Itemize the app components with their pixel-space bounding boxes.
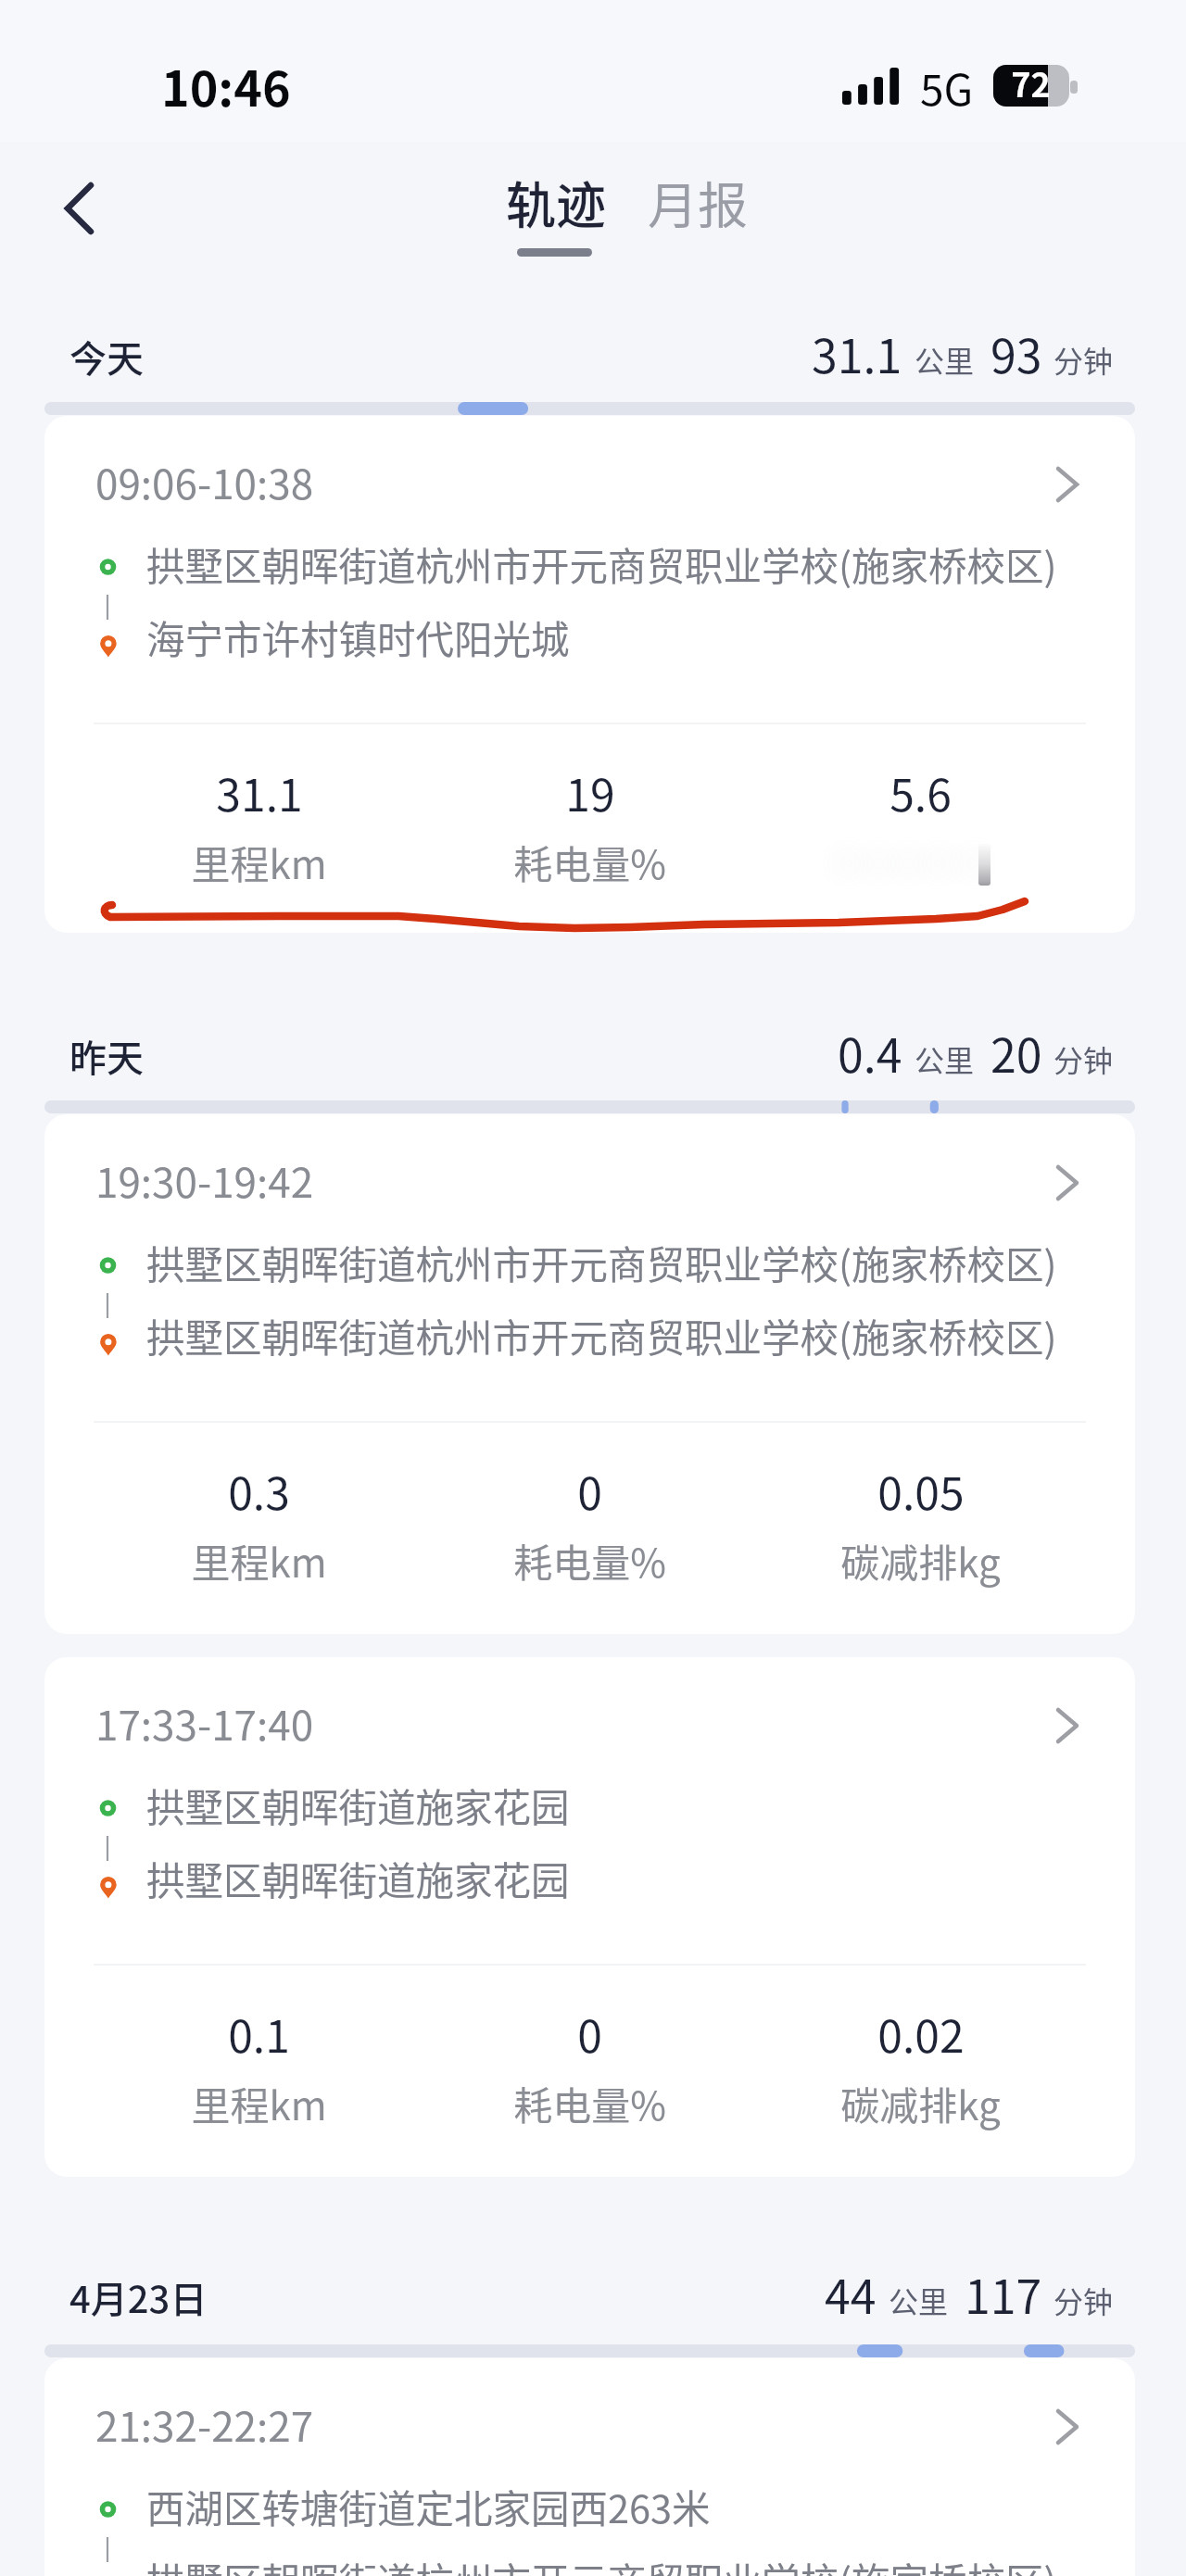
staticText: 轨迹 (506, 166, 610, 238)
staticText: 拱墅区朝晖街道杭州市开元商贸职业学校(施家桥校区) (146, 536, 1057, 592)
button[interactable]: 19:30-19:42 (44, 1114, 1135, 1634)
staticText: 31.1 (812, 320, 902, 386)
staticText: 公里 (915, 1037, 975, 1080)
staticText: 09:06-10:38 (95, 452, 314, 511)
button[interactable]: 21:32-22:27 (44, 2358, 1135, 2576)
staticText: 里程km (191, 834, 327, 890)
staticText: 拱墅区朝晖街道杭州市开元商贸职业学校(施家桥校区) (146, 2552, 1057, 2576)
button[interactable]: 月报 (648, 172, 751, 239)
button[interactable]: 轨迹 (506, 172, 610, 261)
staticText: 20 (990, 1019, 1042, 1086)
staticText: 0 (577, 2001, 602, 2060)
staticText: 西湖区转塘街道定北家园西263米 (146, 2479, 711, 2534)
staticText: 0.3 (228, 1458, 290, 1517)
staticText: 31.1 (216, 760, 303, 819)
staticText: 5.6 (889, 760, 952, 819)
staticText: 里程km (191, 1532, 327, 1589)
staticText: 碳减排kg (840, 2075, 1001, 2131)
staticText: 5G (920, 57, 974, 119)
staticText: 4月23日 (69, 2270, 208, 2324)
staticText: 93 (990, 320, 1042, 386)
button[interactable]: Back (37, 171, 113, 247)
staticText: 耗电量% (513, 1532, 666, 1589)
staticText: 碳减排kg (840, 1532, 1001, 1589)
staticText: 117 (965, 2260, 1042, 2327)
staticText: 0.1 (228, 2001, 290, 2060)
staticText: 分钟 (1054, 2279, 1114, 2321)
staticText: 拱墅区朝晖街道施家花园 (146, 1851, 570, 1906)
staticText: 海宁市许村镇时代阳光城 (146, 609, 570, 665)
staticText: 公里 (915, 338, 975, 381)
staticText: 今天 (69, 330, 144, 383)
staticText: 月报 (648, 166, 751, 232)
staticText: 19:30-19:42 (95, 1150, 314, 1210)
staticText: 44 (825, 2260, 877, 2327)
button[interactable]: 17:33-17:40 (44, 1657, 1135, 2177)
staticText: 0 (577, 1458, 602, 1517)
staticText: 0.02 (877, 2001, 965, 2060)
button[interactable]: 09:06-10:38 (44, 416, 1135, 933)
staticText: 10:46 (161, 51, 291, 120)
staticText: 耗电量% (513, 834, 666, 890)
staticText: 21:32-22:27 (95, 2394, 314, 2454)
staticText: 里程km (191, 2075, 327, 2131)
staticText: 公里 (889, 2279, 949, 2321)
staticText: 昨天 (69, 1029, 144, 1083)
staticText: 17:33-17:40 (95, 1693, 314, 1753)
staticText: 0.05 (877, 1458, 965, 1517)
staticText: 72 (1011, 58, 1051, 100)
staticText: 拱墅区朝晖街道施家花园 (146, 1778, 570, 1833)
staticText: 0.4 (838, 1019, 902, 1086)
staticText: 分钟 (1054, 1037, 1114, 1080)
staticText: 耗电量% (513, 2075, 666, 2131)
staticText: 拱墅区朝晖街道杭州市开元商贸职业学校(施家桥校区) (146, 1235, 1057, 1290)
staticText: 19 (565, 760, 615, 819)
staticText: 拱墅区朝晖街道杭州市开元商贸职业学校(施家桥校区) (146, 1308, 1057, 1363)
staticText: 分钟 (1054, 338, 1114, 381)
